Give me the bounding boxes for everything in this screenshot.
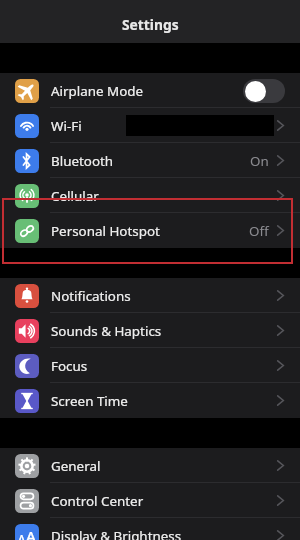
button[interactable]: Screen Time [0,383,300,418]
staticText: Screen Time [51,392,128,410]
button[interactable]: Notifications [0,278,300,313]
button[interactable]: Wi-Fi [0,108,300,143]
staticText: Sounds & Haptics [51,322,162,340]
staticText: Settings [122,15,179,34]
staticText: A [18,531,26,540]
staticText: Off [249,222,269,240]
button[interactable]: Control Center [0,483,300,518]
staticText: A [26,526,36,540]
button[interactable]: Cellular [0,178,300,213]
button[interactable]: Sounds & Haptics [0,313,300,348]
staticText: General [51,457,101,475]
staticText: Cellular [51,187,99,205]
staticText: Display & Brightness [51,527,182,540]
staticText: Personal Hotspot [51,222,160,240]
staticText: Airplane Mode [51,82,144,100]
button[interactable]: Airplane Mode [0,73,300,108]
staticText: Wi-Fi [51,117,82,135]
button[interactable]: A [0,518,300,540]
button[interactable]: Personal Hotspot [0,213,300,248]
staticText: Control Center [51,492,144,510]
staticText: Bluetooth [51,152,114,170]
staticText: Focus [51,357,88,375]
button[interactable]: General [0,448,300,483]
button[interactable]: Focus [0,348,300,383]
staticText: Notifications [51,287,131,305]
button[interactable]: Bluetooth [0,143,300,178]
staticText: On [250,152,269,170]
